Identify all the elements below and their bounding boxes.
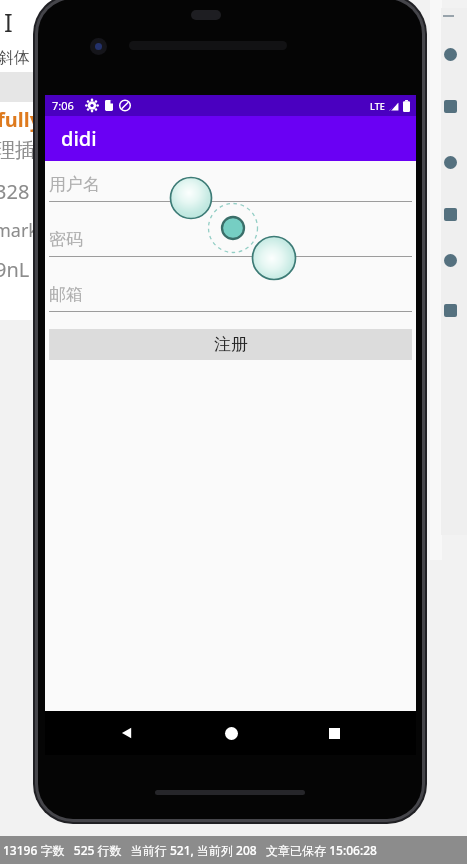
staticText: 邮箱: [49, 284, 83, 305]
button[interactable]: Back: [105, 711, 149, 755]
staticText: 328: [0, 178, 30, 205]
staticText: 斜体: [0, 48, 30, 68]
staticText: 密码: [49, 229, 83, 250]
staticText: mark: [0, 218, 38, 243]
button[interactable]: 用户名: [49, 161, 412, 202]
button[interactable]: 注册: [49, 329, 412, 360]
staticText: 13196 字数 525 行数 当前行 521, 当前列 208 文章已保存 1…: [3, 842, 377, 858]
staticText: LTE: [370, 100, 385, 112]
staticText: 7:06: [52, 98, 74, 113]
button[interactable]: Home: [209, 711, 253, 755]
staticText: 用户名: [49, 174, 100, 195]
button[interactable]: Recent apps: [312, 711, 356, 755]
button[interactable]: 邮箱: [49, 257, 412, 312]
staticText: 9nL: [0, 256, 30, 283]
staticText: fully: [0, 106, 42, 133]
staticText: didi: [61, 125, 97, 152]
button[interactable]: 密码: [49, 202, 412, 257]
staticText: 理插入: [0, 138, 55, 163]
staticText: 注册: [214, 334, 248, 355]
staticText: I: [4, 4, 13, 39]
